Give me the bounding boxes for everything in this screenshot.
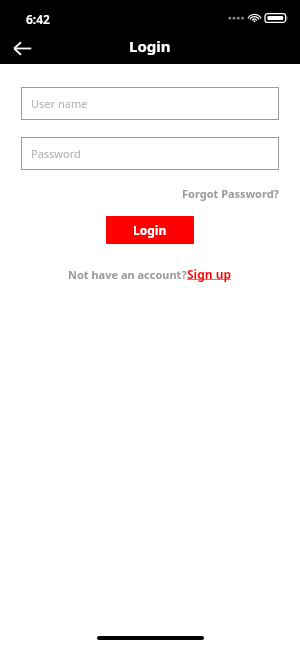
button[interactable]: Login <box>106 216 194 244</box>
button[interactable]: Password <box>21 137 279 170</box>
staticText: 6:42 <box>26 11 50 27</box>
button[interactable]: Sign up <box>187 266 232 282</box>
button[interactable]: Back <box>6 32 38 64</box>
staticText: User name <box>31 96 88 111</box>
staticText: Password <box>31 146 81 161</box>
staticText: Sign up <box>187 266 232 282</box>
staticText: Login <box>129 36 171 56</box>
staticText: Forgot Password? <box>182 186 279 201</box>
button[interactable]: Forgot Password? <box>182 186 279 201</box>
staticText: Not have an account? <box>68 267 187 282</box>
staticText: Login <box>133 222 167 238</box>
button[interactable]: User name <box>21 87 279 120</box>
